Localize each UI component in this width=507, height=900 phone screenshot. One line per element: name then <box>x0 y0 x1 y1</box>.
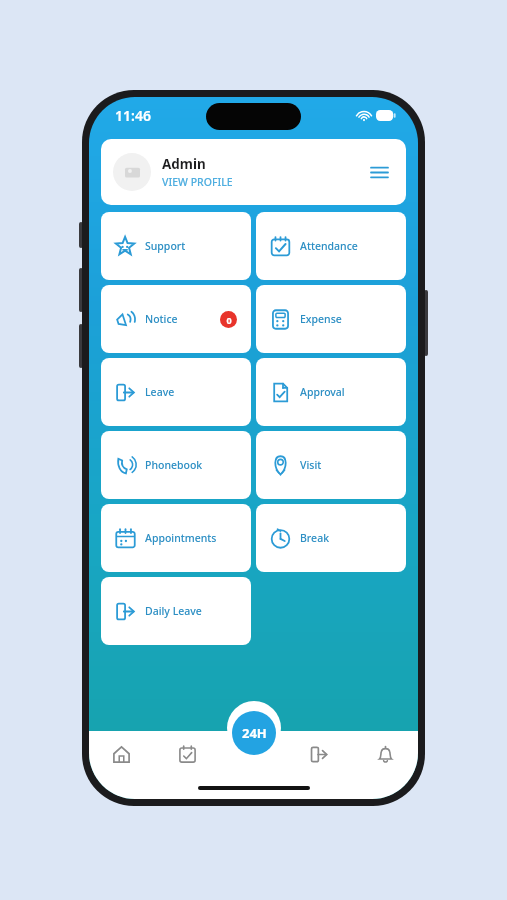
staticText: Visit <box>300 458 322 472</box>
button[interactable]: Logout <box>286 731 352 777</box>
button[interactable]: Tasks <box>154 731 220 777</box>
button[interactable]: Support <box>101 212 251 280</box>
staticText: Leave <box>145 385 175 399</box>
staticText: Notice <box>145 312 178 326</box>
button[interactable]: Expense <box>256 285 406 353</box>
button[interactable]: Notice <box>101 285 251 353</box>
staticText: Admin <box>162 155 206 173</box>
staticText: Approval <box>300 385 345 399</box>
staticText: Break <box>300 531 330 545</box>
button[interactable]: Daily Leave <box>101 577 251 645</box>
button[interactable]: Approval <box>256 358 406 426</box>
staticText: Support <box>145 239 186 253</box>
button[interactable]: Appointments <box>101 504 251 572</box>
button[interactable]: Visit <box>256 431 406 499</box>
staticText: 0 <box>226 314 232 326</box>
button[interactable]: Leave <box>101 358 251 426</box>
staticText: 11:46 <box>115 106 151 125</box>
staticText: Attendance <box>300 239 358 253</box>
button[interactable]: Break <box>256 504 406 572</box>
staticText: Daily Leave <box>145 604 202 618</box>
staticText: Appointments <box>145 531 217 545</box>
staticText: Expense <box>300 312 342 326</box>
button[interactable]: Menu <box>364 157 394 187</box>
button[interactable]: Attendance <box>256 212 406 280</box>
button[interactable]: Notifications <box>352 731 418 777</box>
button[interactable]: Home <box>89 731 154 777</box>
button[interactable]: 24H <box>232 711 276 755</box>
staticText: 24H <box>242 724 267 742</box>
button[interactable]: Admin <box>101 139 406 205</box>
button[interactable]: Phonebook <box>101 431 251 499</box>
staticText: VIEW PROFILE <box>162 175 233 189</box>
staticText: Phonebook <box>145 458 203 472</box>
